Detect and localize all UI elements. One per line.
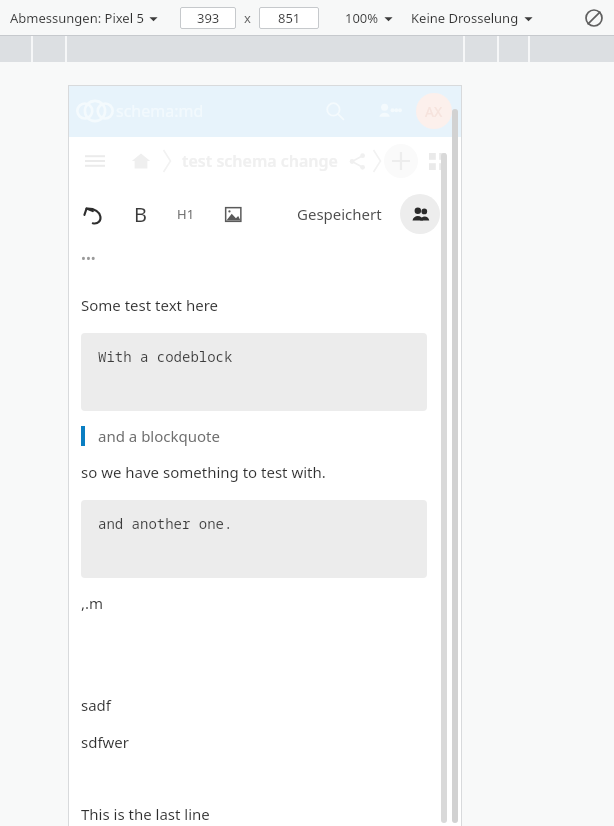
staticText: so we have something to test with. bbox=[81, 462, 326, 482]
button[interactable]: Nextcloud home bbox=[78, 94, 204, 128]
button[interactable]: test schema change bbox=[182, 150, 338, 172]
staticText: Gespeichert bbox=[297, 204, 382, 224]
staticText: x bbox=[244, 9, 251, 27]
button[interactable]: Abmessungen: Pixel 5 bbox=[8, 6, 160, 30]
button[interactable]: Collaborators bbox=[400, 194, 440, 234]
button[interactable]: Contacts bbox=[372, 94, 406, 128]
staticText: H1 bbox=[177, 205, 195, 223]
staticText: AX bbox=[425, 102, 443, 121]
button[interactable]: New bbox=[384, 144, 418, 178]
staticText: ,.m bbox=[81, 593, 104, 613]
staticText: With a codeblock bbox=[98, 347, 233, 366]
button[interactable]: 851 bbox=[259, 7, 319, 29]
button[interactable]: Rotate bbox=[580, 4, 608, 32]
staticText: B bbox=[134, 201, 147, 228]
staticText: 100% bbox=[345, 9, 379, 27]
staticText: and a blockquote bbox=[98, 426, 220, 446]
staticText: sadf bbox=[81, 695, 111, 715]
staticText: 393 bbox=[197, 9, 220, 27]
button[interactable]: Menu bbox=[80, 146, 110, 176]
staticText: Keine Drosselung bbox=[411, 9, 519, 27]
button[interactable]: 393 bbox=[180, 7, 236, 29]
button[interactable]: Home bbox=[128, 148, 154, 174]
button[interactable]: Undo bbox=[74, 194, 114, 234]
button[interactable]: Share bbox=[346, 150, 368, 172]
staticText: and another one. bbox=[98, 514, 233, 533]
staticText: sdfwer bbox=[81, 732, 130, 752]
staticText: This is the last line bbox=[81, 804, 210, 824]
staticText: test schema change bbox=[182, 150, 338, 172]
staticText: schema:md bbox=[116, 100, 204, 122]
staticText: Abmessungen: Pixel 5 bbox=[10, 9, 144, 27]
button[interactable]: Account bbox=[416, 93, 452, 129]
staticText: ••• bbox=[81, 249, 96, 267]
button[interactable]: 100% bbox=[343, 6, 395, 30]
button[interactable]: Heading 1 bbox=[166, 194, 206, 234]
staticText: 851 bbox=[278, 9, 301, 27]
button[interactable]: Keine Drosselung bbox=[409, 6, 535, 30]
button[interactable]: Gespeichert bbox=[291, 198, 388, 230]
button[interactable]: Grid view bbox=[424, 148, 450, 174]
staticText: Some test text here bbox=[81, 295, 218, 315]
button[interactable]: Insert image bbox=[212, 194, 252, 234]
button[interactable]: Bold bbox=[120, 194, 160, 234]
